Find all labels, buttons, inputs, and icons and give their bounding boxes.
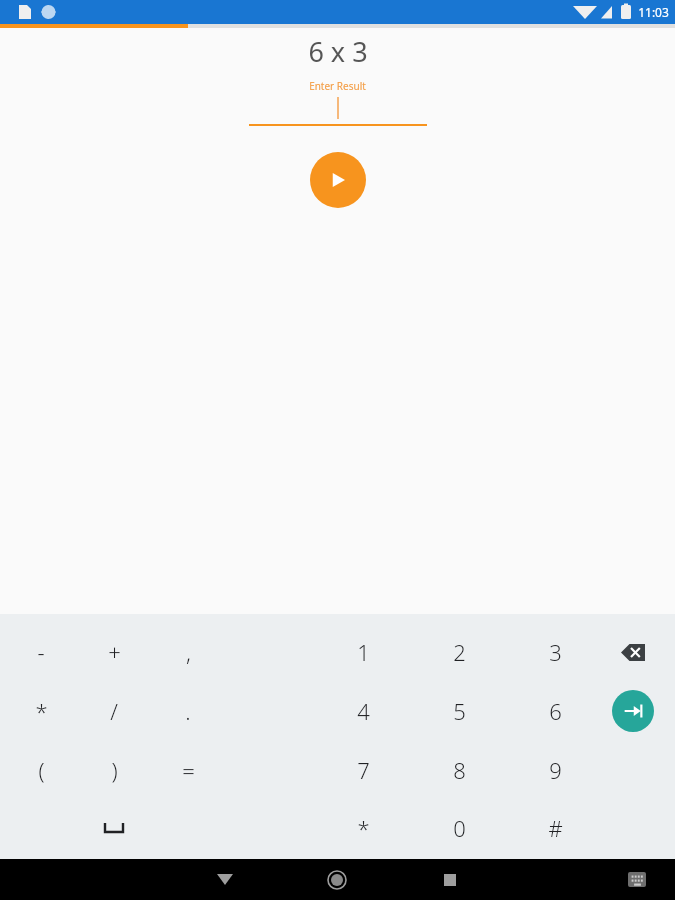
button[interactable]: 1 [327,626,399,678]
button[interactable]: Backspace [607,630,659,674]
staticText: 1 [357,637,370,667]
button[interactable]: Recent apps [426,859,474,900]
button[interactable]: 3 [519,626,591,678]
staticText: ( [38,755,45,785]
button[interactable]: + [78,626,150,678]
staticText: 6 x 3 [308,33,368,70]
staticText: 5 [453,696,466,726]
button[interactable]: Switch keyboard [617,859,657,900]
staticText: 4 [357,696,370,726]
staticText: 7 [357,755,370,785]
button[interactable]: 4 [327,685,399,737]
button[interactable]: 0 [423,802,495,854]
staticText: Enter Result [309,79,366,93]
button[interactable]: = [152,744,224,796]
staticText: / [110,696,118,726]
staticText: * [35,696,48,726]
button[interactable]: 7 [327,744,399,796]
button[interactable]: ) [78,744,150,796]
staticText: 8 [453,755,466,785]
staticText: 2 [453,637,466,667]
staticText: - [37,637,45,667]
button[interactable]: 6 [519,685,591,737]
button[interactable]: # [519,802,591,854]
button[interactable]: Hide keyboard [201,859,249,900]
button[interactable]: ( [5,744,77,796]
staticText: 0 [453,813,466,843]
button[interactable]: - [5,626,77,678]
staticText: , [186,637,191,667]
button[interactable]: , [152,626,224,678]
button[interactable]: Space [90,806,138,850]
staticText: 9 [549,755,562,785]
staticText: 11:03 [638,4,669,20]
button[interactable]: * [5,685,77,737]
button[interactable]: Start [310,152,366,208]
button[interactable]: 2 [423,626,495,678]
button[interactable]: 9 [519,744,591,796]
staticText: # [548,813,563,843]
button[interactable]: Enter [612,690,654,732]
button[interactable]: / [78,685,150,737]
staticText: . [185,696,191,726]
staticText: 6 [549,696,562,726]
button[interactable]: 8 [423,744,495,796]
staticText: = [182,755,195,785]
button[interactable]: * [327,802,399,854]
button[interactable] [249,93,427,127]
button[interactable]: Home [313,859,361,900]
staticText: * [357,813,370,843]
staticText: 3 [549,637,562,667]
staticText: + [108,637,121,667]
button[interactable]: . [152,685,224,737]
button[interactable]: 5 [423,685,495,737]
staticText: ) [111,755,118,785]
